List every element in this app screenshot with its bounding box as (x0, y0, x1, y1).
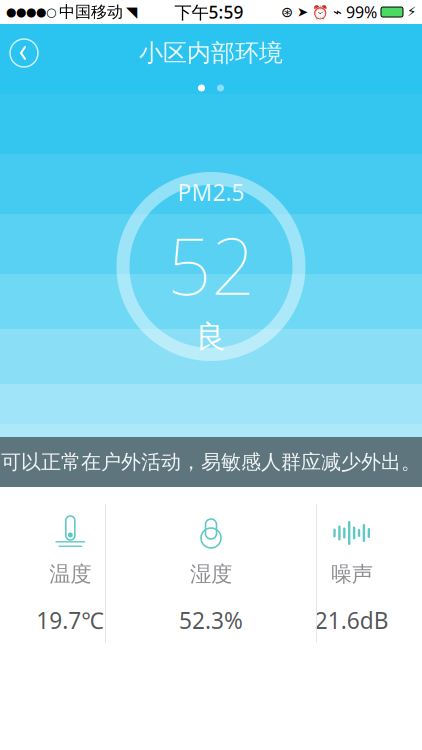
staticText: 中国移动 (59, 2, 123, 22)
staticText: 52.3% (179, 605, 243, 635)
staticText: 小区内部环境 (139, 38, 283, 68)
staticText: 可以正常在户外活动，易敏感人群应减少外出。 (1, 450, 421, 474)
staticText: ⊛ (281, 4, 293, 20)
staticText: 99% (346, 1, 377, 23)
staticText: 52 (167, 213, 255, 316)
staticText: ◥ (126, 4, 137, 20)
staticText: 21.6dB (315, 605, 389, 635)
staticText: 湿度 (190, 561, 232, 587)
staticText: PM2.5 (177, 177, 244, 207)
staticText: 下午5:59 (174, 0, 243, 23)
button[interactable]: 温度 (0, 501, 141, 645)
button[interactable]: 湿度 (141, 501, 281, 645)
staticText: 温度 (49, 561, 91, 587)
staticText: 噪声 (331, 561, 373, 587)
staticText: ⌁ (333, 4, 342, 20)
button[interactable]: 返回 (2, 31, 46, 75)
staticText: ⏰ (312, 4, 329, 20)
staticText: 19.7℃ (36, 605, 104, 635)
button[interactable]: 噪声 (281, 501, 422, 645)
staticText: ●●●●○ (6, 5, 56, 19)
staticText: ⚡︎ (407, 4, 416, 19)
staticText: 良 (195, 318, 226, 356)
staticText: ➤ (297, 4, 308, 19)
